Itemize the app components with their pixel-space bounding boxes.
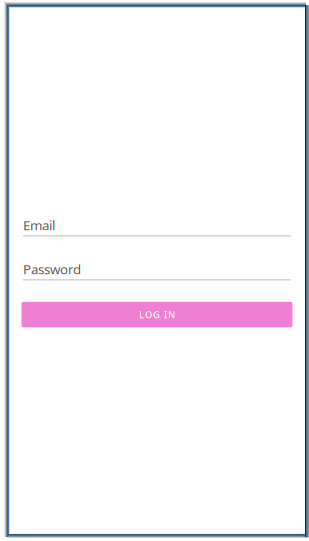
button[interactable]: Email [23,223,291,237]
staticText: Password [23,260,81,278]
button[interactable]: LOG IN [21,302,292,327]
staticText: LOG IN [139,308,175,321]
staticText: Email [23,216,55,234]
button[interactable]: Password [23,267,291,281]
